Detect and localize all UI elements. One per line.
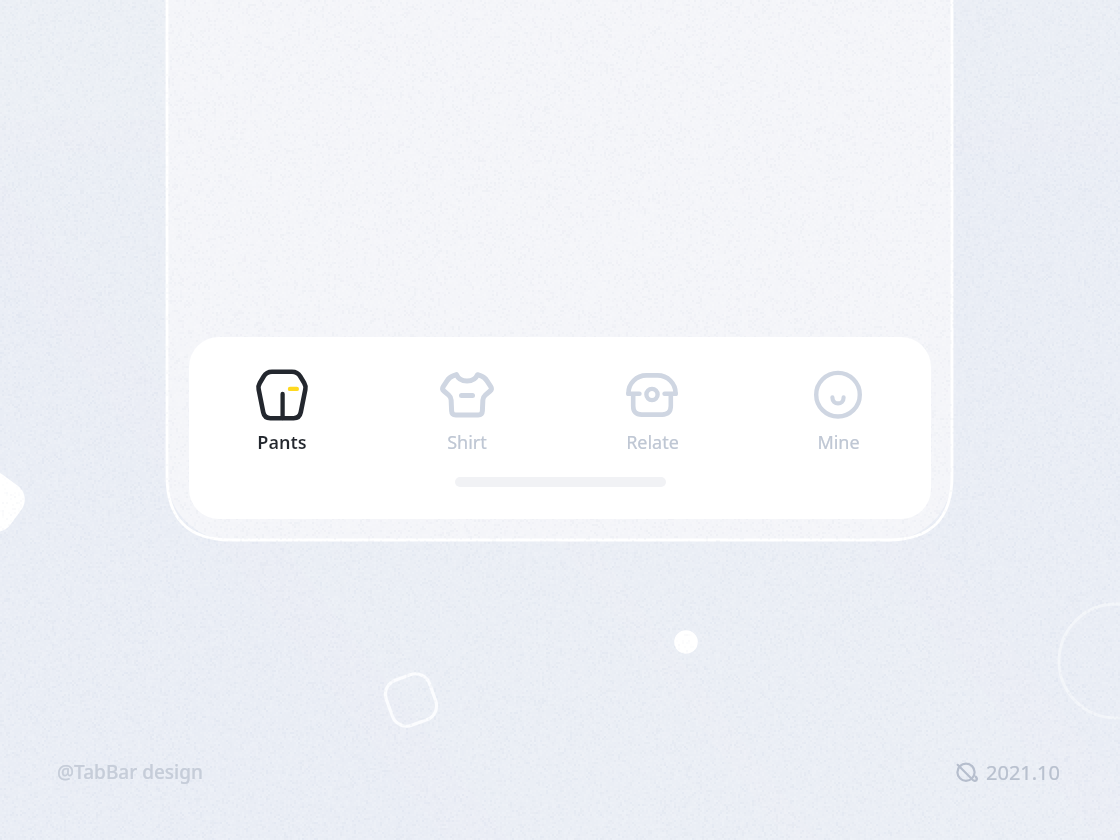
staticText: Pants <box>257 430 307 455</box>
other: Design credit <box>955 761 977 783</box>
button[interactable]: Mine <box>745 337 931 467</box>
staticText: Relate <box>626 430 679 455</box>
button[interactable]: Pants <box>189 337 374 467</box>
button[interactable]: Relate <box>559 337 745 467</box>
staticText: Shirt <box>447 430 487 455</box>
staticText: 2021.10 <box>986 759 1060 786</box>
button[interactable]: Shirt <box>374 337 559 467</box>
staticText: @TabBar design <box>57 759 203 785</box>
staticText: Mine <box>817 430 860 455</box>
